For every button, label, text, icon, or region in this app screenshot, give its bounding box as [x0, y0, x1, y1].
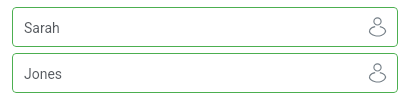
button[interactable]: Jones: [12, 53, 398, 93]
button[interactable]: Sarah: [12, 7, 398, 47]
staticText: Jones: [24, 66, 63, 82]
staticText: Sarah: [24, 20, 60, 36]
other: Account: [369, 17, 386, 36]
other: Account: [369, 63, 386, 82]
